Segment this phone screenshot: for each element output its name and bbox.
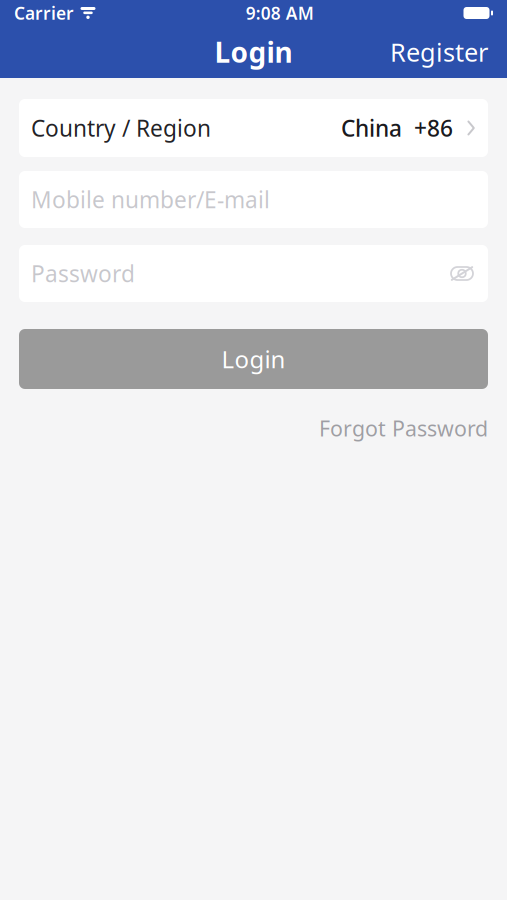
- button[interactable]: Mobile number/E-mail: [19, 171, 488, 228]
- staticText: Register: [390, 35, 488, 69]
- staticText: Forgot Password: [319, 414, 488, 442]
- staticText: Password: [31, 258, 135, 288]
- staticText: Mobile number/E-mail: [31, 184, 270, 214]
- staticText: Login: [221, 343, 285, 375]
- staticText: +86: [414, 113, 453, 143]
- button[interactable]: Country / Region: [19, 99, 488, 157]
- staticText: 9:08 AM: [246, 1, 314, 24]
- button[interactable]: Forgot Password: [319, 410, 488, 446]
- button[interactable]: Register: [380, 27, 498, 77]
- staticText: Country / Region: [31, 113, 211, 143]
- staticText: China: [341, 113, 402, 143]
- staticText: Login: [214, 33, 292, 71]
- button[interactable]: Password: [19, 245, 488, 302]
- staticText: Carrier: [14, 1, 74, 24]
- button[interactable]: Login: [19, 329, 488, 389]
